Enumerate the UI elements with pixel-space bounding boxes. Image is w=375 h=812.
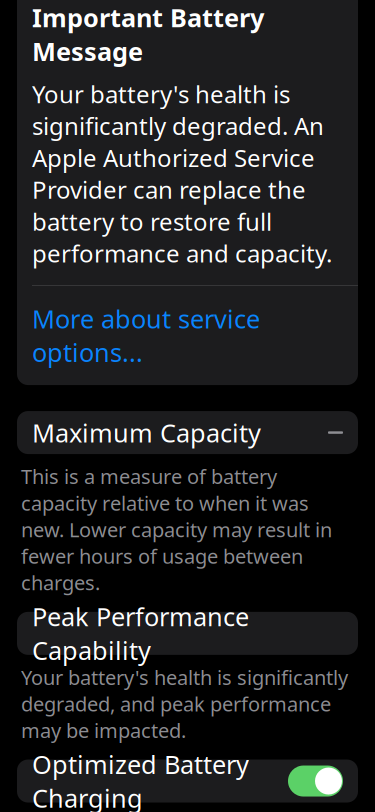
staticText: Your battery's health is significantly d… (32, 78, 332, 269)
staticText: Maximum Capacity (32, 416, 261, 449)
staticText: Important Battery Message (32, 1, 264, 68)
staticText: Optimized Battery Charging (32, 747, 249, 812)
button[interactable]: Peak Performance Capability (17, 612, 358, 655)
button[interactable]: Maximum Capacity (17, 411, 358, 454)
staticText: More about service options... (32, 302, 260, 369)
button[interactable]: More about service options... (17, 286, 358, 385)
staticText: Peak Performance Capability (32, 600, 249, 667)
staticText: Your battery's health is significantly d… (21, 664, 348, 744)
staticText: This is a measure of battery capacity re… (21, 463, 332, 596)
button[interactable]: Optimized Battery Charging (17, 759, 358, 802)
